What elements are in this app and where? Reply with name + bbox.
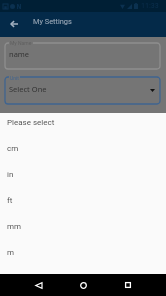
button[interactable]: mm — [0, 213, 166, 239]
staticText: My Settings — [33, 17, 72, 26]
staticText: Unit — [10, 75, 19, 81]
button[interactable] — [5, 43, 160, 69]
staticText: mm — [7, 222, 22, 231]
staticText: name — [9, 49, 30, 59]
staticText: Please select — [7, 118, 55, 127]
staticText: Select One — [9, 84, 47, 94]
button[interactable]: cm — [0, 135, 166, 161]
button[interactable]: Home — [72, 274, 94, 296]
button[interactable]: m — [0, 239, 166, 265]
staticText: 11:33 — [141, 2, 159, 10]
button[interactable]: ft — [0, 187, 166, 213]
staticText: My Name — [10, 40, 32, 46]
staticText: in — [7, 170, 14, 179]
button[interactable]: in — [0, 161, 166, 187]
button[interactable]: Recent apps — [117, 274, 139, 296]
staticText: cm — [7, 144, 19, 153]
button[interactable]: Back — [27, 274, 49, 296]
staticText: m — [7, 248, 15, 257]
button[interactable] — [5, 77, 160, 104]
staticText: ft — [7, 196, 13, 205]
button[interactable]: Back — [5, 15, 22, 32]
button[interactable]: Please select — [0, 109, 166, 135]
